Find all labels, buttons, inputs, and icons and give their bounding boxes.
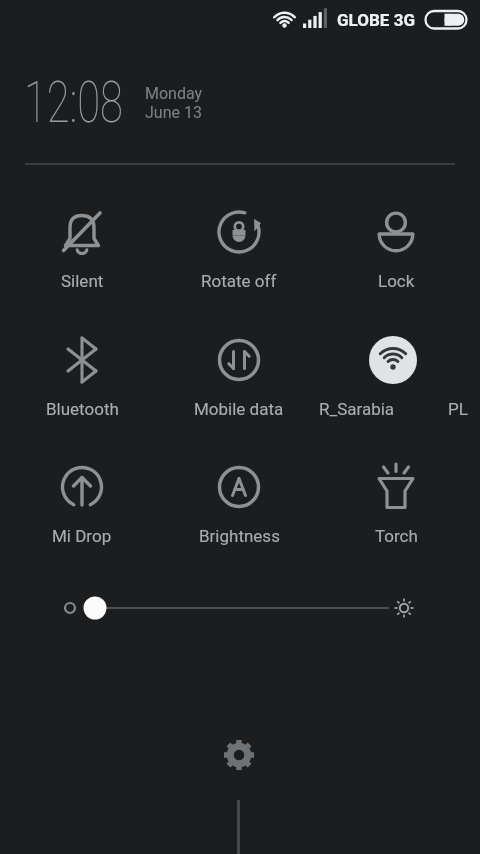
staticText: Bluetooth bbox=[46, 399, 119, 419]
button[interactable]: Bluetooth bbox=[7, 328, 157, 420]
button[interactable]: Mobile data bbox=[164, 328, 314, 420]
button[interactable]: Torch bbox=[321, 455, 471, 547]
staticText: Brightness bbox=[199, 526, 280, 546]
staticText: Silent bbox=[61, 271, 104, 291]
button[interactable] bbox=[215, 731, 263, 779]
staticText: 12:08 bbox=[24, 68, 123, 136]
button[interactable] bbox=[40, 583, 440, 633]
button[interactable]: Silent bbox=[7, 200, 157, 292]
button[interactable]: Lock bbox=[321, 200, 471, 292]
staticText: PL bbox=[448, 399, 468, 419]
button[interactable]: R_Sarabia bbox=[318, 328, 468, 420]
staticText: Rotate off bbox=[201, 271, 277, 291]
button[interactable]: Mi Drop bbox=[7, 455, 157, 547]
staticText: June 13 bbox=[145, 103, 202, 122]
staticText: R_Sarabia bbox=[319, 399, 395, 419]
staticText: Mobile data bbox=[194, 399, 284, 419]
staticText: Mi Drop bbox=[52, 526, 112, 546]
staticText: Lock bbox=[378, 271, 415, 291]
staticText: GLOBE 3G bbox=[337, 10, 415, 30]
button[interactable]: Brightness bbox=[164, 455, 314, 547]
staticText: Monday bbox=[145, 84, 203, 103]
staticText: Torch bbox=[375, 526, 418, 546]
button[interactable]: Rotate off bbox=[164, 200, 314, 292]
